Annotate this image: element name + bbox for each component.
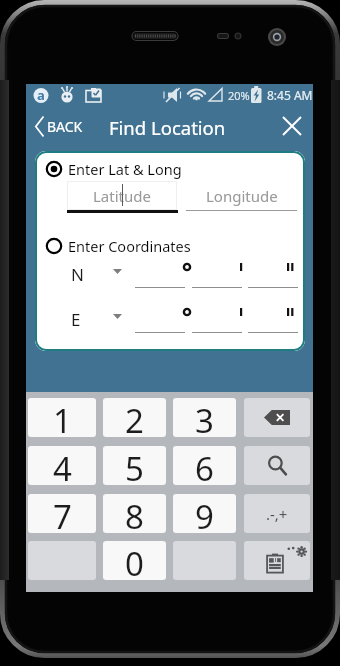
staticText: 2 — [125, 398, 144, 437]
button[interactable]: 4 — [28, 446, 96, 485]
button[interactable]: Select direction — [105, 306, 129, 326]
staticText: 20% — [228, 88, 250, 103]
button[interactable]: .-,+ — [244, 494, 310, 533]
staticText: Latitude — [93, 186, 151, 206]
button[interactable]: 7 — [28, 494, 96, 533]
staticText: E — [71, 308, 81, 331]
button[interactable]: Enter Coordinates — [45, 236, 191, 256]
button[interactable]: 9 — [173, 494, 236, 533]
staticText: a — [37, 86, 45, 104]
button[interactable]: Clipboard settings — [244, 541, 310, 580]
staticText: BACK — [47, 117, 83, 136]
staticText: Enter Coordinates — [68, 236, 191, 256]
button[interactable]: 2 — [103, 398, 166, 437]
staticText: N — [71, 263, 84, 286]
staticText: Find Location — [109, 115, 226, 140]
button[interactable]: Latitude — [67, 181, 177, 210]
staticText: 4 — [53, 446, 72, 485]
button[interactable]: BACK — [26, 111, 91, 142]
staticText: 9 — [195, 494, 214, 533]
button[interactable]: 0 — [103, 541, 166, 580]
staticText: 3 — [195, 398, 214, 437]
button[interactable]: Search — [244, 446, 310, 485]
button[interactable]: 6 — [173, 446, 236, 485]
button[interactable]: 3 — [173, 398, 236, 437]
button[interactable]: Enter Lat & Long — [45, 159, 182, 179]
staticText: .-,+ — [266, 504, 288, 524]
button[interactable]: 1 — [28, 398, 96, 437]
button[interactable]: Select direction — [105, 261, 129, 281]
staticText: Enter Lat & Long — [68, 159, 182, 179]
staticText: 6 — [195, 446, 214, 485]
button[interactable]: 5 — [103, 446, 166, 485]
staticText: Longitude — [206, 186, 278, 206]
button[interactable]: Close — [279, 113, 305, 139]
staticText: 5 — [125, 446, 144, 485]
staticText: 8 — [125, 494, 144, 533]
staticText: 0 — [125, 541, 144, 580]
button[interactable]: Longitude — [186, 181, 297, 210]
button[interactable]: Delete — [244, 398, 310, 437]
staticText: 8:45 AM — [267, 87, 313, 103]
staticText: 7 — [53, 494, 72, 533]
staticText: 1 — [53, 398, 72, 437]
button[interactable]: 8 — [103, 494, 166, 533]
